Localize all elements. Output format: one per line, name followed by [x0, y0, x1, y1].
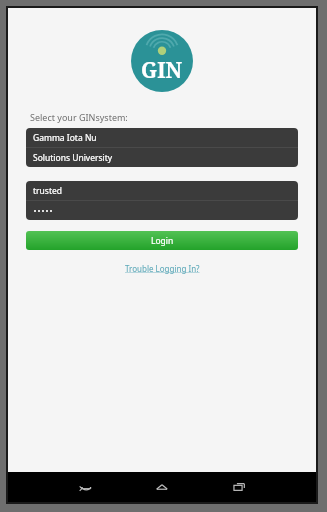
button[interactable]: Back: [74, 476, 96, 498]
button[interactable]: Home: [151, 476, 173, 498]
button[interactable]: Trouble Logging In?: [121, 261, 204, 276]
staticText: trusted: [33, 185, 62, 197]
button[interactable]: Solutions University: [26, 148, 298, 167]
button[interactable]: Password: [26, 201, 298, 220]
staticText: Trouble Logging In?: [125, 263, 200, 274]
button[interactable]: trusted: [26, 181, 298, 200]
staticText: Select your GINsystem:: [30, 111, 128, 123]
staticText: GIN: [141, 56, 183, 85]
staticText: Solutions University: [33, 152, 113, 164]
button[interactable]: Gamma Iota Nu: [26, 128, 298, 147]
staticText: Gamma Iota Nu: [33, 132, 97, 144]
button[interactable]: Recent apps: [228, 476, 250, 498]
button[interactable]: Login: [26, 231, 298, 250]
staticText: Login: [151, 235, 174, 247]
